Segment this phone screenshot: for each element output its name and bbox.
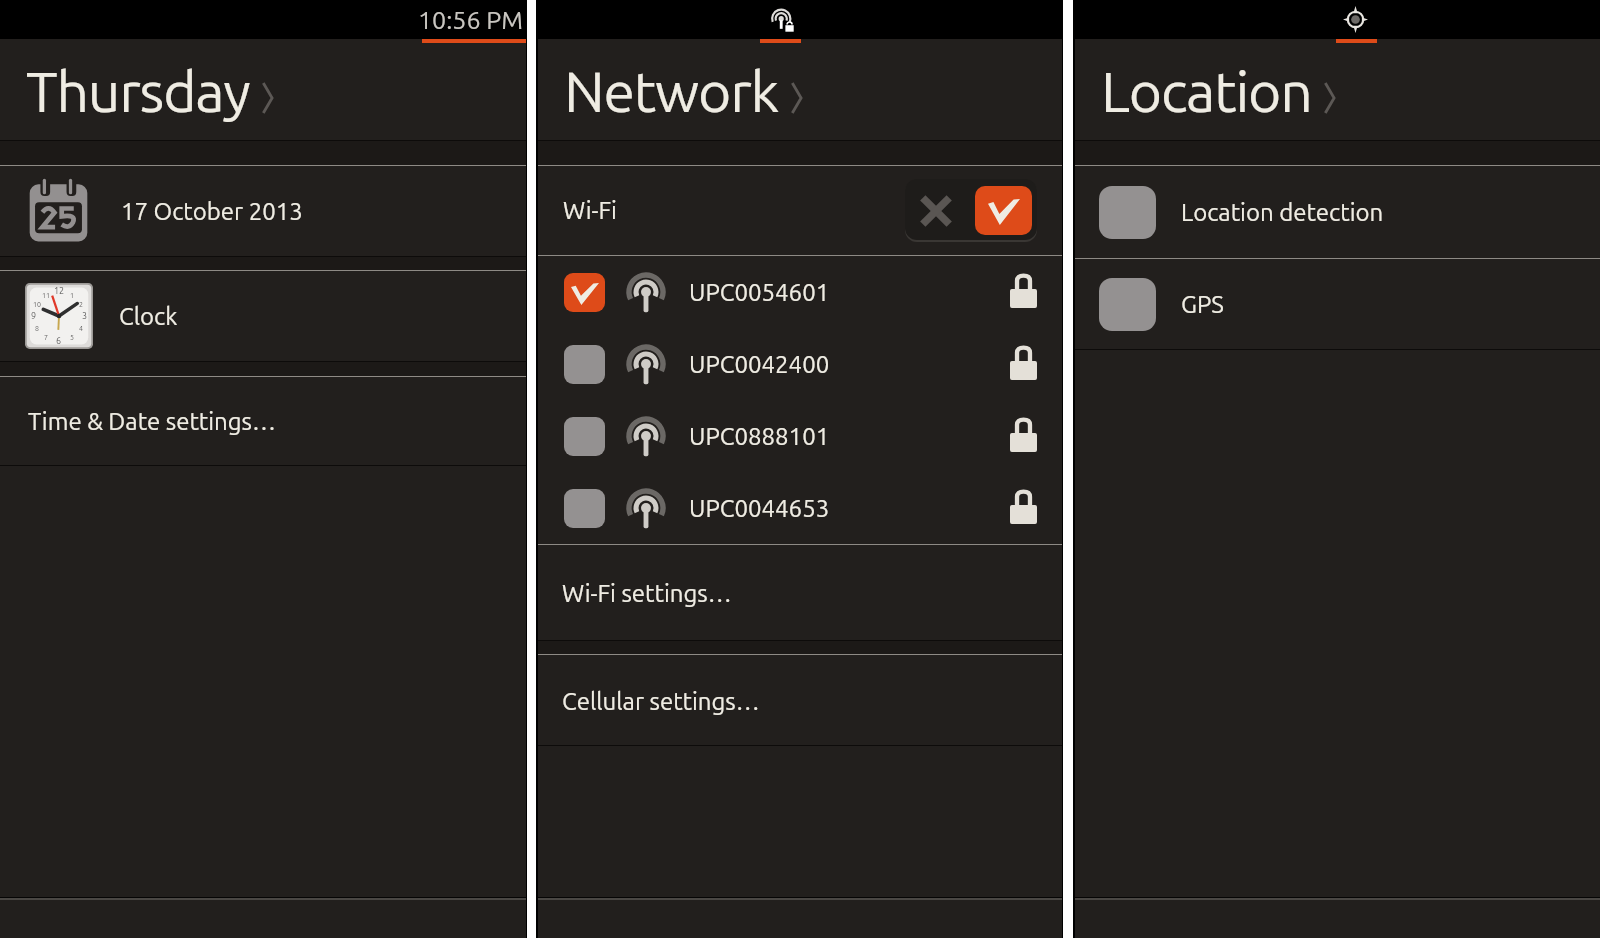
staticText: UPC0042400	[689, 351, 830, 378]
button[interactable]: Time & Date settings…	[0, 377, 526, 465]
staticText: 2	[79, 300, 83, 308]
staticText: GPS	[1181, 291, 1224, 318]
button[interactable]: Wi-Fi settings…	[538, 545, 1062, 640]
button[interactable]: Wi-Fi on	[905, 179, 1037, 242]
staticText: 6	[56, 336, 62, 346]
staticText: Clock	[119, 303, 178, 330]
staticText: 10:56 PM	[418, 6, 523, 34]
button[interactable]: Location detection	[1075, 166, 1600, 258]
staticText: UPC0044653	[689, 495, 830, 522]
staticText: 4	[79, 324, 83, 332]
button[interactable]: Location	[1075, 43, 1600, 140]
staticText: 10	[33, 300, 41, 308]
staticText: 7	[44, 333, 48, 341]
staticText: Network	[564, 59, 779, 123]
button[interactable]: 17 October 2013	[0, 166, 526, 256]
staticText: Wi-Fi settings…	[562, 580, 732, 607]
staticText: Wi-Fi	[563, 197, 617, 224]
button[interactable]: UPC0042400	[538, 328, 1062, 400]
staticText: 3	[82, 311, 88, 321]
button[interactable]: UPC0044653	[538, 472, 1062, 544]
staticText: 8	[35, 324, 39, 332]
staticText: Time & Date settings…	[28, 408, 276, 435]
staticText: 11	[42, 291, 50, 299]
staticText: Location detection	[1181, 199, 1384, 226]
button[interactable]: GPS	[1075, 259, 1600, 349]
staticText: 17 October 2013	[121, 198, 303, 225]
staticText: Cellular settings…	[562, 688, 760, 715]
button[interactable]: Network	[538, 43, 1062, 140]
staticText: 12	[54, 286, 65, 296]
staticText: 5	[70, 333, 74, 341]
staticText: UPC0054601	[689, 279, 830, 306]
button[interactable]: UPC0888101	[538, 400, 1062, 472]
button[interactable]: 12	[0, 271, 526, 361]
button[interactable]: Cellular settings…	[538, 655, 1062, 745]
button[interactable]: Thursday	[0, 43, 526, 140]
button[interactable]: Wi-Fi	[538, 166, 1062, 255]
staticText: Location	[1101, 59, 1312, 123]
button[interactable]: UPC0054601	[538, 256, 1062, 328]
other: Wi-Fi secured	[769, 7, 795, 33]
other: Location	[1343, 6, 1368, 33]
staticText: UPC0888101	[689, 423, 830, 450]
staticText: 1	[70, 291, 74, 299]
staticText: 9	[31, 311, 37, 321]
staticText: Thursday	[26, 59, 250, 123]
